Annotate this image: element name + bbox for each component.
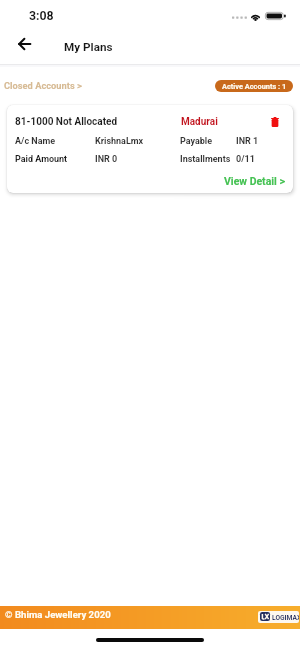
button[interactable]: Back (12, 32, 36, 56)
staticText: A/c Name (15, 136, 56, 147)
button[interactable]: Closed Accounts > (4, 80, 82, 91)
button[interactable]: View Detail > (224, 175, 285, 187)
staticText: LOGIMAX (272, 614, 299, 622)
staticText: KrishnaLmx (95, 136, 144, 147)
staticText: Paid Amount (15, 154, 68, 165)
button[interactable]: Active Accounts : 1 (215, 80, 293, 92)
staticText: Installments (180, 154, 231, 165)
staticText: 0/11 (236, 154, 255, 165)
button[interactable]: Logimax (258, 611, 299, 623)
staticText: Payable (180, 136, 213, 147)
staticText: Active Accounts : 1 (222, 82, 287, 91)
button[interactable]: 81-1000 Not Allocated (7, 105, 293, 193)
staticText: Madurai (181, 116, 218, 128)
staticText: My Plans (64, 40, 113, 54)
staticText: 3:08 (29, 9, 54, 23)
staticText: © Bhima Jewellery 2020 (5, 609, 111, 620)
staticText: INR 0 (95, 154, 118, 165)
staticText: 81-1000 Not Allocated (15, 116, 118, 128)
button[interactable]: Delete (266, 113, 284, 131)
staticText: INR 1 (236, 136, 259, 147)
